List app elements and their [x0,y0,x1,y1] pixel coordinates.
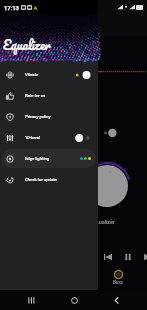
button[interactable]: Next [141,250,147,263]
staticText: Bass [113,280,123,285]
staticText: Rate for us [25,93,46,98]
staticText: Check for update [25,177,57,182]
staticText: 17:13 [4,4,19,11]
button[interactable]: Check for update [2,170,96,189]
button[interactable]: Home [63,290,85,310]
button[interactable]: Recents [20,290,42,310]
staticText: 10-band [25,135,41,140]
staticText: Equalizer [3,34,51,55]
button[interactable]: Pause [121,250,134,263]
button[interactable]: Vibrate toggle [75,70,91,80]
staticText: Vibrate [25,72,39,77]
button[interactable]: 10-band [2,128,96,147]
staticText: Privacy policy [25,114,51,119]
button[interactable]: Previous [101,250,114,263]
button[interactable]: Back [105,290,127,310]
button[interactable]: Rate for us [2,86,96,105]
button[interactable]: 10-band toggle [75,133,91,143]
button[interactable]: Vibrate [2,65,96,84]
button[interactable]: Edge lighting [2,149,96,168]
button[interactable]: Edge lighting colours [80,157,91,160]
staticText: Virtualizer [90,219,115,225]
staticText: Edge lighting [25,156,50,161]
button[interactable]: Privacy policy [2,107,96,126]
